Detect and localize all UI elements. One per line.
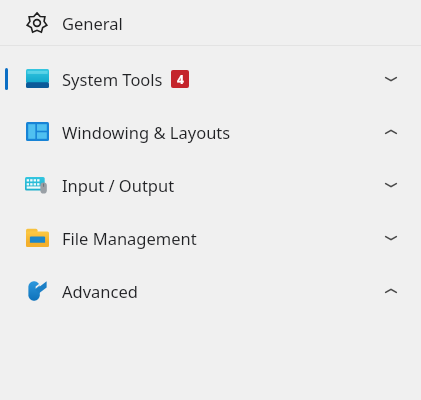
staticText: File Management xyxy=(62,227,197,249)
button[interactable]: Windowing & Layouts xyxy=(0,110,421,153)
staticText: Windowing & Layouts xyxy=(62,121,231,143)
staticText: System Tools xyxy=(62,68,163,90)
staticText: General xyxy=(62,12,123,34)
button[interactable]: Collapse Windowing & Layouts xyxy=(371,112,411,152)
button[interactable]: Input / Output xyxy=(0,163,421,206)
button[interactable]: Expand File Management xyxy=(371,218,411,258)
button[interactable]: General xyxy=(0,0,421,45)
button[interactable]: Expand System Tools xyxy=(371,59,411,99)
button[interactable]: Collapse Advanced xyxy=(371,271,411,311)
button[interactable]: File Management xyxy=(0,216,421,259)
button[interactable]: Advanced xyxy=(0,269,421,312)
staticText: Input / Output xyxy=(62,174,175,196)
button[interactable]: Expand Input / Output xyxy=(371,165,411,205)
button[interactable]: System Tools xyxy=(0,57,421,100)
staticText: 4 xyxy=(177,71,184,87)
staticText: Advanced xyxy=(62,280,138,302)
